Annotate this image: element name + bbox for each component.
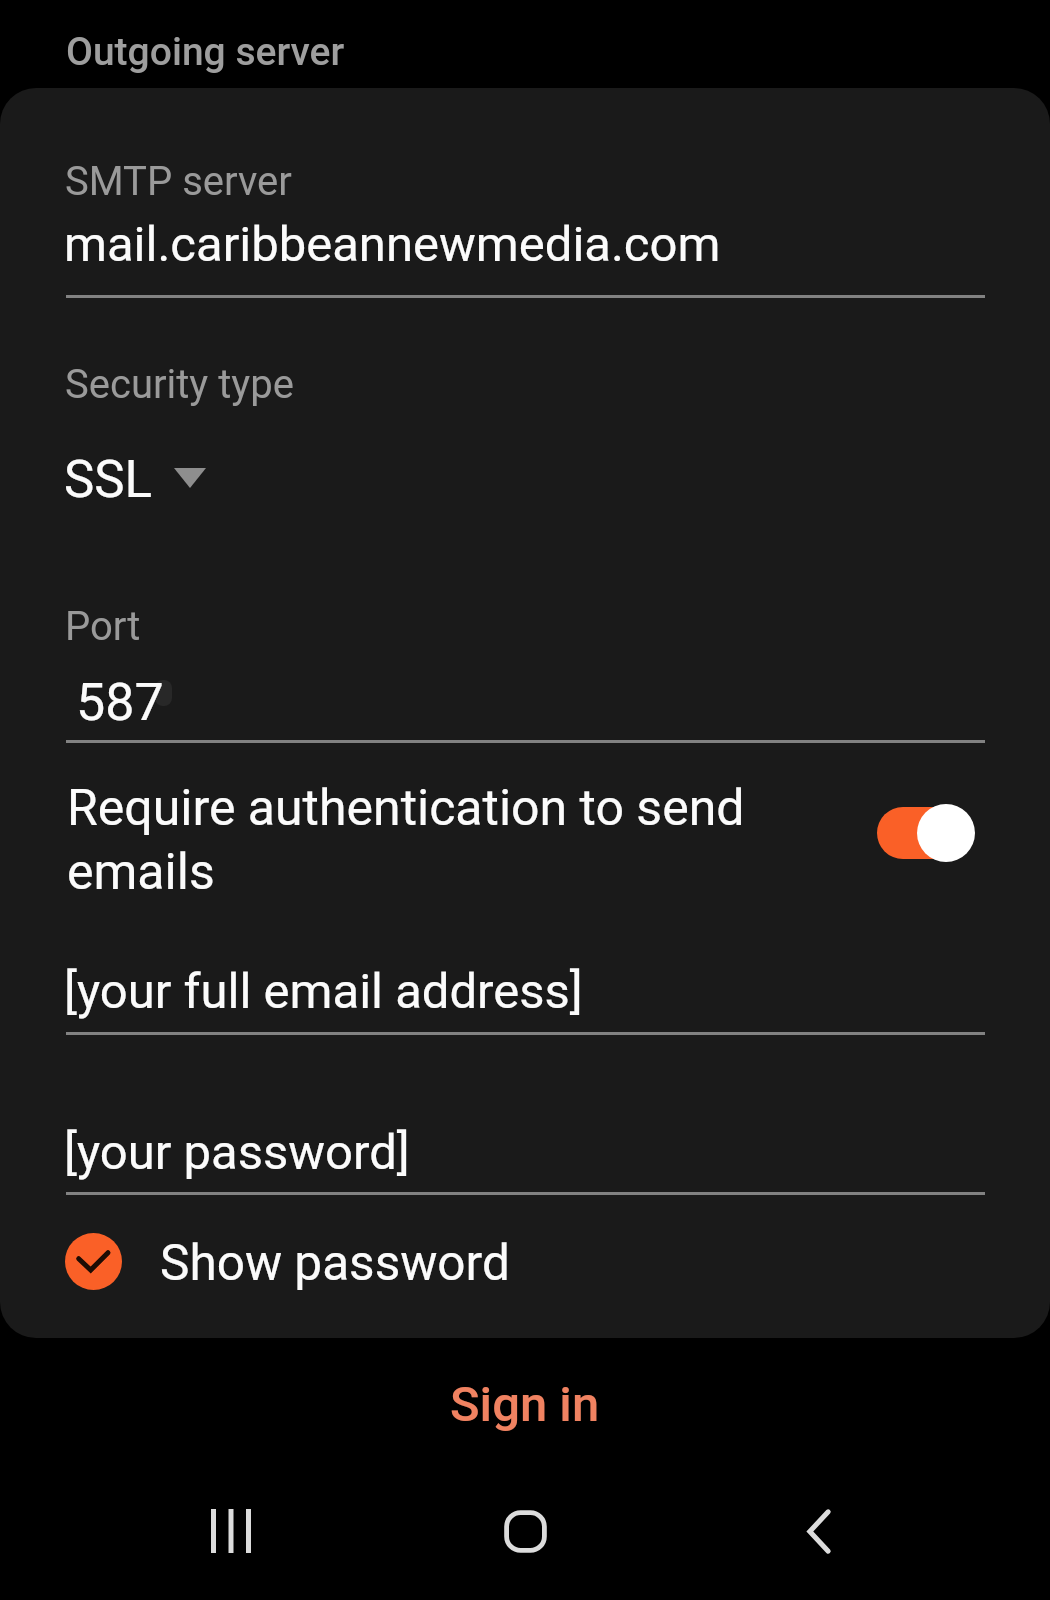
button[interactable]: [your full email address]: [66, 953, 985, 1035]
button[interactable]: Sign in: [0, 1364, 1050, 1444]
button[interactable]: [your password]: [66, 1114, 985, 1196]
button[interactable]: SMTP server: [66, 148, 985, 298]
staticText: Show password: [160, 1234, 510, 1292]
button[interactable]: Show password: [65, 1232, 510, 1290]
staticText: [your password]: [64, 1124, 410, 1181]
staticText: Security type: [65, 361, 294, 408]
staticText: SMTP server: [65, 158, 292, 205]
staticText: [your full email address]: [64, 963, 583, 1020]
staticText: Outgoing server: [66, 29, 345, 75]
staticText: Port: [65, 603, 141, 650]
staticText: SSL: [64, 450, 153, 510]
staticText: Sign in: [450, 1376, 600, 1433]
button[interactable]: Home: [445, 1451, 605, 1600]
button[interactable]: Port: [66, 593, 985, 743]
staticText: Require authentication to send emails: [67, 779, 767, 901]
button[interactable]: SSL: [52, 438, 232, 518]
button[interactable]: Back: [739, 1451, 899, 1600]
staticText: mail.caribbeannewmedia.com: [64, 216, 721, 273]
staticText: 587: [76, 672, 164, 733]
button[interactable]: Require authentication to send emails: [0, 768, 1050, 964]
button[interactable]: Recent apps: [151, 1451, 311, 1600]
